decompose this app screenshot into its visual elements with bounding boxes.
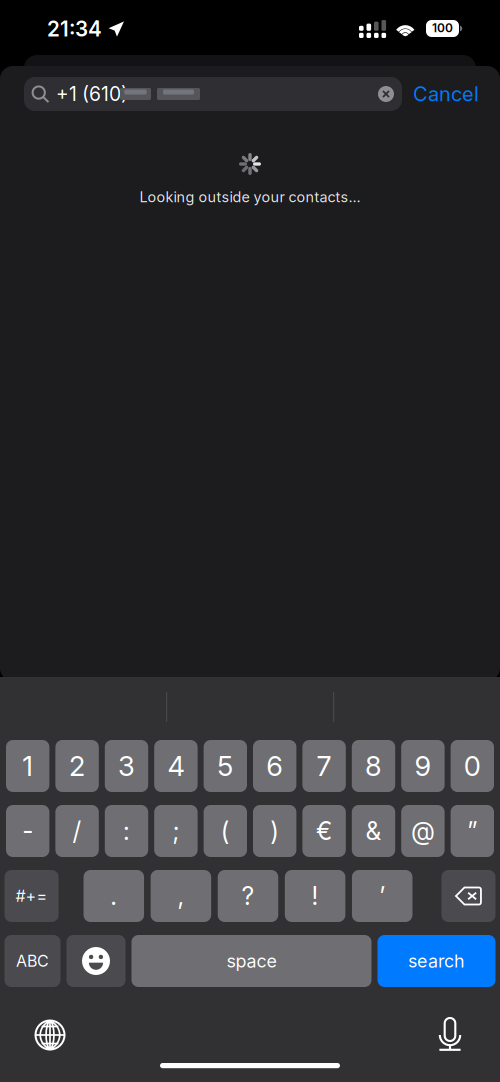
- button[interactable]: search: [377, 935, 495, 987]
- staticText: @: [411, 816, 435, 846]
- staticText: .: [110, 881, 117, 911]
- staticText: 7: [317, 749, 332, 783]
- staticText: search: [408, 950, 465, 972]
- button[interactable]: 2: [55, 740, 99, 792]
- staticText: 1: [22, 749, 33, 783]
- staticText: 2: [69, 749, 85, 783]
- button[interactable]: !: [285, 870, 345, 922]
- button[interactable]: &: [352, 805, 395, 857]
- button[interactable]: +1 (610): [24, 77, 402, 111]
- button[interactable]: 9: [401, 740, 445, 792]
- button[interactable]: .: [84, 870, 144, 922]
- staticText: ): [270, 816, 279, 846]
- button[interactable]: Next keyboard: [22, 1011, 78, 1059]
- button[interactable]: ?: [218, 870, 278, 922]
- staticText: 8: [365, 749, 382, 783]
- button[interactable]: /: [55, 805, 99, 857]
- button[interactable]: Emoji: [66, 935, 125, 987]
- button[interactable]: :: [105, 805, 148, 857]
- staticText: 6: [266, 749, 283, 783]
- staticText: €: [316, 816, 332, 846]
- staticText: &: [365, 816, 381, 846]
- staticText: ?: [241, 881, 254, 911]
- staticText: :: [123, 816, 130, 846]
- button[interactable]: Dictation: [422, 1010, 478, 1058]
- button[interactable]: ’: [352, 870, 412, 922]
- staticText: space: [226, 950, 276, 972]
- staticText: #+=: [16, 886, 48, 906]
- staticText: (: [221, 816, 230, 846]
- button[interactable]: space: [131, 935, 371, 987]
- staticText: ABC: [16, 951, 49, 971]
- button[interactable]: 5: [204, 740, 247, 792]
- button[interactable]: @: [401, 805, 445, 857]
- staticText: 9: [414, 749, 431, 783]
- button[interactable]: €: [302, 805, 346, 857]
- staticText: 5: [217, 749, 233, 783]
- staticText: Looking outside your contacts...: [139, 188, 360, 206]
- staticText: -: [22, 816, 33, 846]
- staticText: ”: [467, 816, 477, 846]
- button[interactable]: 6: [253, 740, 296, 792]
- button[interactable]: 0: [451, 740, 494, 792]
- button[interactable]: ”: [451, 805, 494, 857]
- button[interactable]: ABC: [4, 935, 60, 987]
- staticText: /: [73, 816, 82, 846]
- button[interactable]: Delete: [441, 870, 495, 922]
- button[interactable]: 3: [105, 740, 148, 792]
- staticText: ;: [172, 816, 179, 846]
- staticText: 21:34: [47, 16, 102, 41]
- button[interactable]: 8: [352, 740, 395, 792]
- staticText: 0: [464, 749, 481, 783]
- button[interactable]: #+=: [5, 870, 59, 922]
- staticText: 100: [432, 21, 453, 35]
- button[interactable]: ): [253, 805, 296, 857]
- button[interactable]: 4: [154, 740, 198, 792]
- staticText: 3: [118, 749, 135, 783]
- button[interactable]: Cancel: [415, 77, 477, 111]
- button[interactable]: 1: [6, 740, 49, 792]
- button[interactable]: -: [6, 805, 49, 857]
- button[interactable]: ,: [151, 870, 211, 922]
- staticText: Cancel: [413, 82, 479, 106]
- staticText: !: [312, 881, 319, 911]
- staticText: 4: [167, 749, 184, 783]
- staticText: ’: [379, 881, 385, 911]
- staticText: ,: [177, 881, 184, 911]
- button[interactable]: ;: [154, 805, 198, 857]
- button[interactable]: 7: [302, 740, 346, 792]
- button[interactable]: (: [204, 805, 247, 857]
- staticText: +1 (610): [56, 82, 128, 106]
